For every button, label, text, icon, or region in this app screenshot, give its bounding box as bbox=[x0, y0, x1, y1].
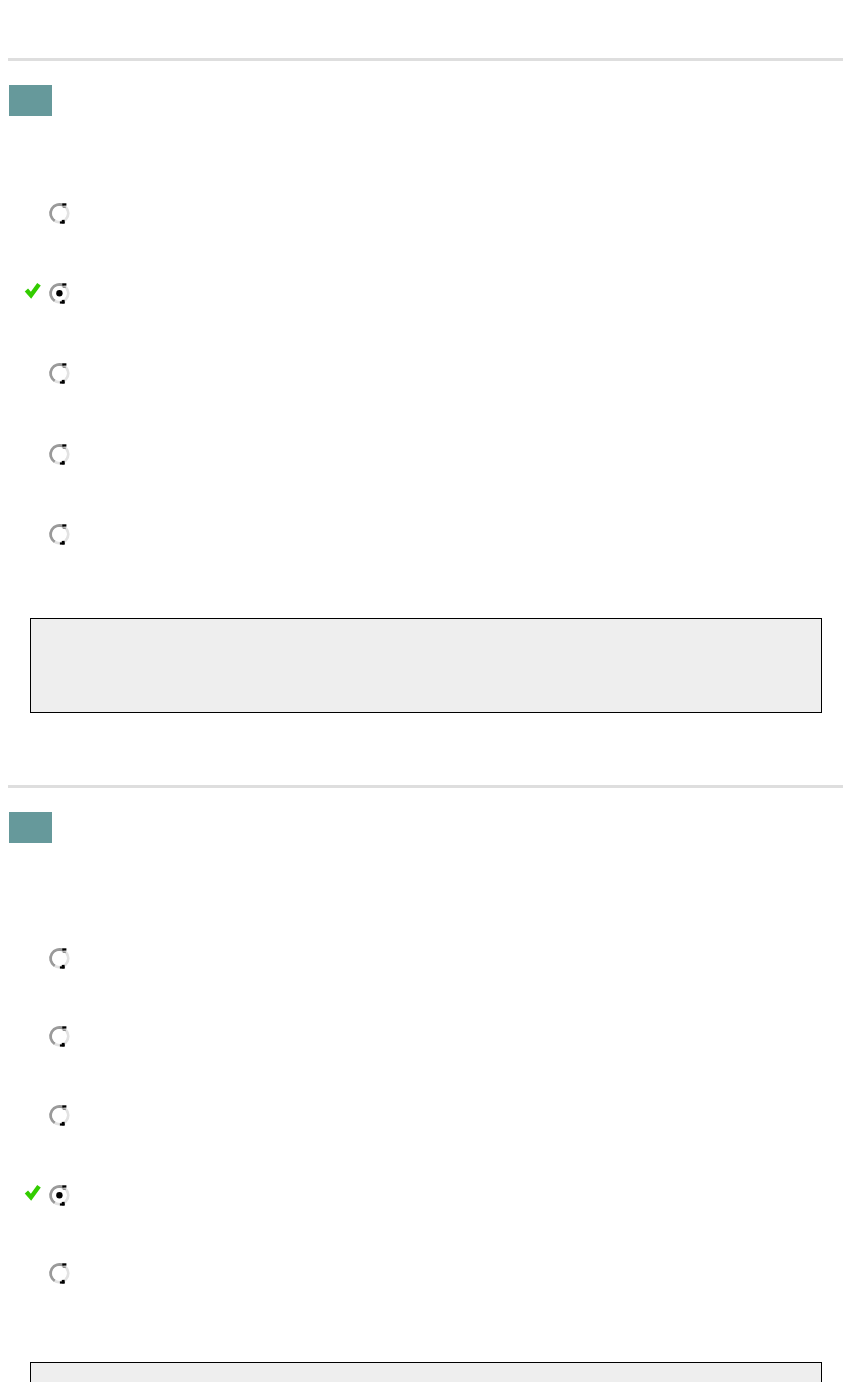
button[interactable]: Answer explanation bbox=[30, 1362, 822, 1382]
button[interactable]: Correct answer option, selected bbox=[0, 282, 843, 305]
button[interactable]: Answer option bbox=[0, 947, 843, 970]
button[interactable]: Answer explanation bbox=[30, 618, 822, 713]
button[interactable]: Answer option bbox=[0, 523, 843, 546]
button[interactable]: Answer option bbox=[0, 202, 843, 225]
button[interactable]: Correct answer option, selected bbox=[0, 1184, 843, 1207]
button[interactable]: Answer option bbox=[0, 1025, 843, 1048]
button[interactable]: Answer option bbox=[0, 443, 843, 466]
button[interactable]: Answer option bbox=[0, 1262, 843, 1285]
button[interactable]: Answer option bbox=[0, 362, 843, 385]
button[interactable]: Answer option bbox=[0, 1104, 843, 1127]
